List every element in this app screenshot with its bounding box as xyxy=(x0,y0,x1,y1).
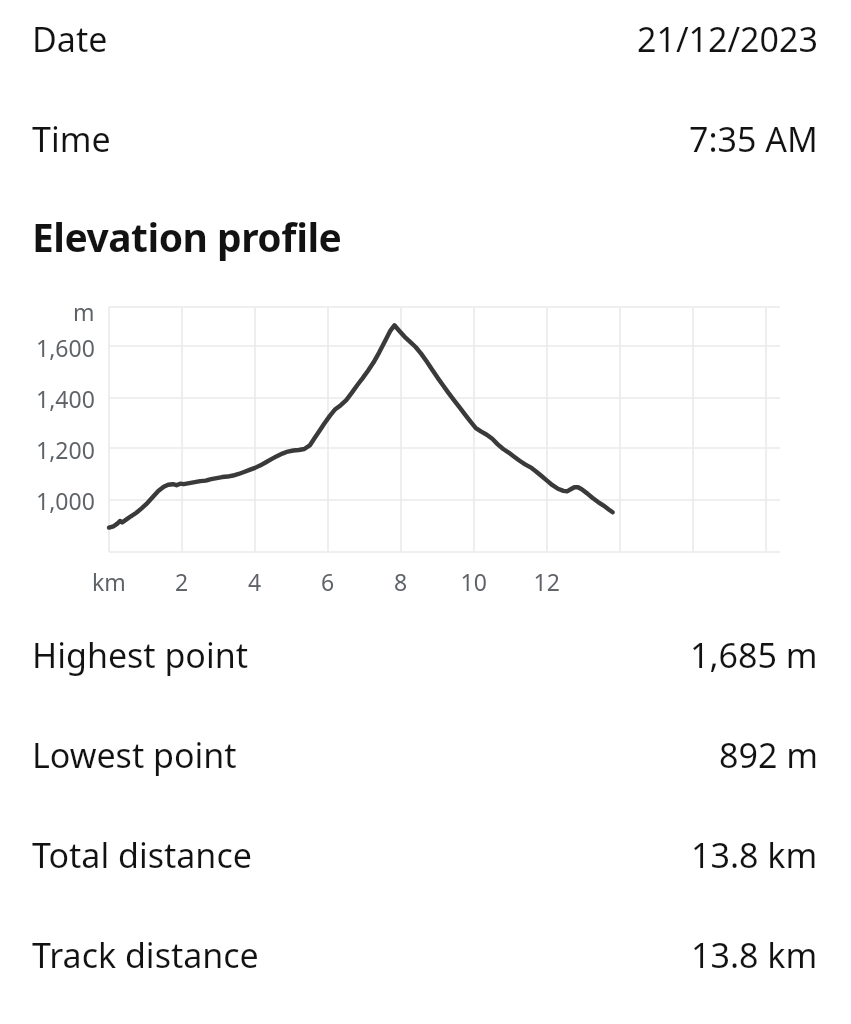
button[interactable]: Highest point xyxy=(0,632,851,678)
staticText: Lowest point xyxy=(32,732,237,778)
staticText: 21/12/2023 xyxy=(637,16,818,62)
staticText: 7:35 AM xyxy=(689,116,818,162)
staticText: Time xyxy=(32,116,111,162)
staticText: Total distance xyxy=(32,832,252,878)
button[interactable]: Date xyxy=(0,16,851,62)
staticText: 1,685 m xyxy=(690,632,818,678)
staticText: 892 m xyxy=(719,732,818,778)
staticText: Highest point xyxy=(32,632,249,678)
button[interactable]: Time xyxy=(0,116,851,162)
button[interactable]: Total distance xyxy=(0,832,851,878)
staticText: 13.8 km xyxy=(691,932,818,978)
staticText: Date xyxy=(32,16,108,62)
staticText: Elevation profile xyxy=(32,210,342,263)
staticText: 13.8 km xyxy=(691,832,818,878)
button[interactable]: Lowest point xyxy=(0,732,851,778)
button[interactable]: Track distance xyxy=(0,932,851,978)
staticText: Track distance xyxy=(32,932,259,978)
